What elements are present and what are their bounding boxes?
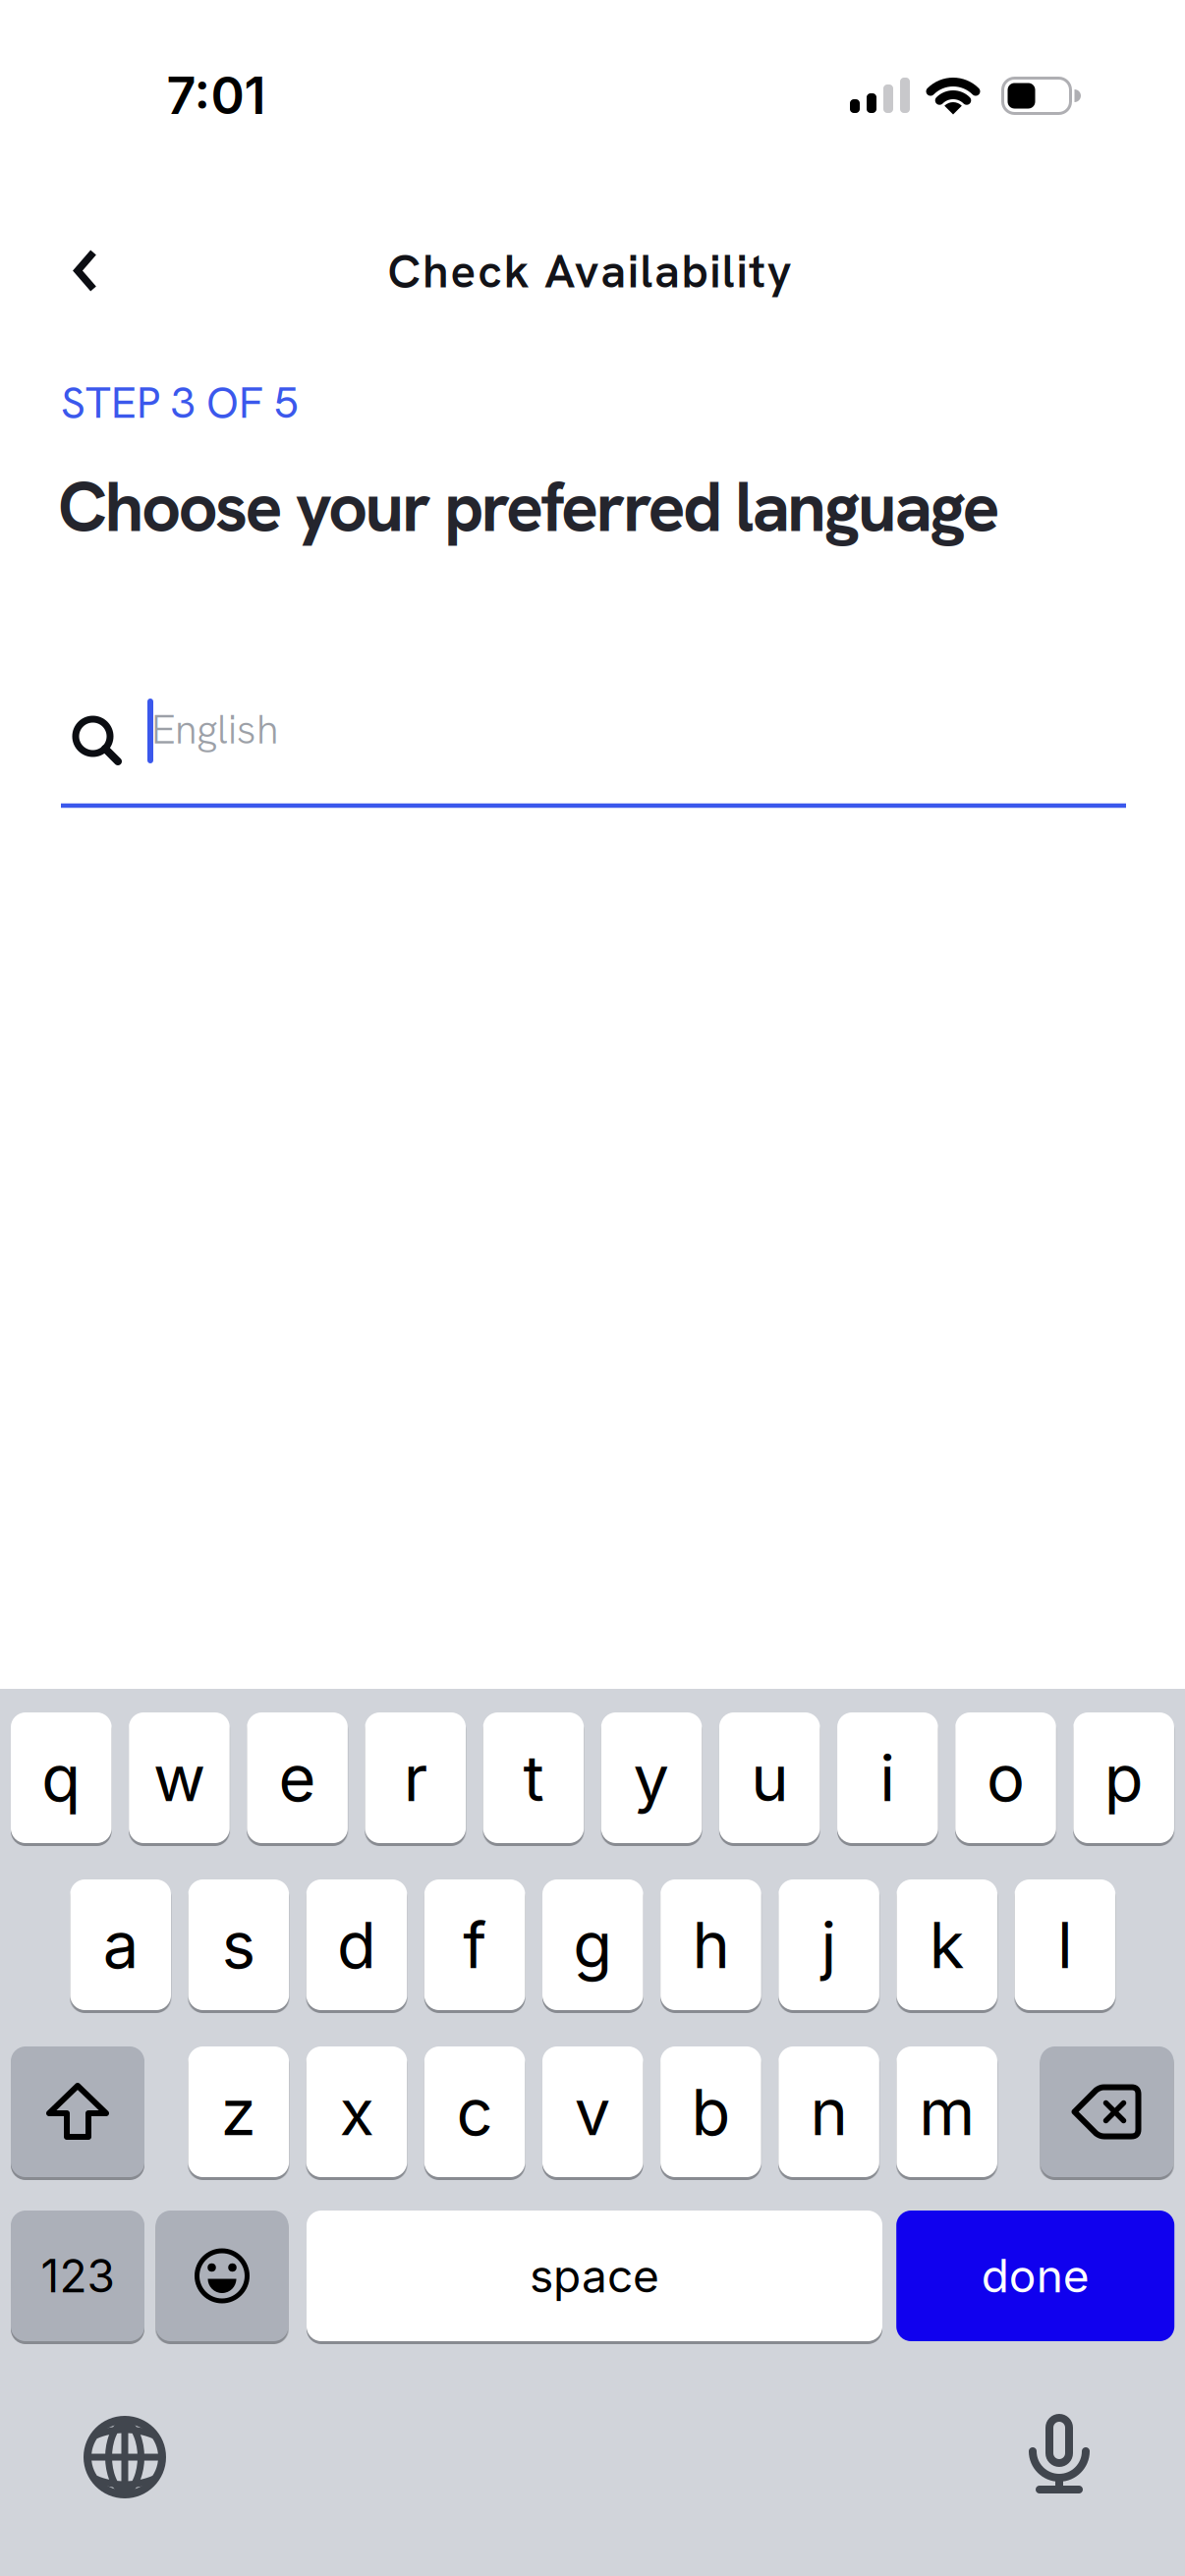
- button[interactable]: s: [188, 1879, 289, 2010]
- button[interactable]: Emoji: [156, 2211, 288, 2341]
- staticText: j: [821, 1906, 837, 1983]
- button[interactable]: c: [424, 2046, 525, 2177]
- staticText: a: [103, 1906, 138, 1983]
- staticText: Choose your preferred language: [58, 462, 1000, 552]
- button[interactable]: done: [896, 2211, 1174, 2341]
- staticText: 7:01: [167, 64, 266, 126]
- button[interactable]: y: [601, 1712, 702, 1843]
- staticText: m: [919, 2073, 975, 2150]
- button[interactable]: j: [779, 1879, 879, 2010]
- staticText: English: [151, 702, 279, 756]
- button[interactable]: e: [247, 1712, 348, 1843]
- button[interactable]: Next keyboard: [84, 2416, 166, 2498]
- staticText: b: [691, 2073, 730, 2150]
- button[interactable]: h: [660, 1879, 761, 2010]
- button[interactable]: p: [1073, 1712, 1174, 1843]
- button[interactable]: r: [365, 1712, 466, 1843]
- button[interactable]: x: [306, 2046, 407, 2177]
- staticText: w: [153, 1739, 205, 1816]
- button[interactable]: u: [719, 1712, 820, 1843]
- staticText: i: [880, 1739, 896, 1816]
- button[interactable]: m: [897, 2046, 997, 2177]
- staticText: t: [523, 1739, 544, 1816]
- button[interactable]: Dictate: [1018, 2412, 1100, 2494]
- staticText: y: [633, 1739, 670, 1816]
- staticText: l: [1057, 1906, 1073, 1983]
- staticText: o: [987, 1739, 1025, 1816]
- staticText: g: [573, 1906, 612, 1983]
- staticText: c: [457, 2073, 493, 2150]
- button[interactable]: 123: [11, 2211, 144, 2341]
- button[interactable]: Delete: [1040, 2046, 1174, 2177]
- staticText: u: [751, 1739, 788, 1816]
- button[interactable]: w: [129, 1712, 230, 1843]
- staticText: z: [221, 2073, 256, 2150]
- staticText: f: [463, 1906, 487, 1983]
- button[interactable]: b: [660, 2046, 761, 2177]
- button[interactable]: n: [778, 2046, 879, 2177]
- staticText: k: [929, 1906, 965, 1983]
- button[interactable]: q: [11, 1712, 112, 1843]
- button[interactable]: v: [542, 2046, 643, 2177]
- button[interactable]: Shift: [11, 2046, 144, 2177]
- staticText: q: [42, 1739, 81, 1816]
- button[interactable]: k: [897, 1879, 997, 2010]
- staticText: h: [692, 1906, 730, 1983]
- staticText: space: [530, 2249, 659, 2303]
- button[interactable]: g: [542, 1879, 643, 2010]
- staticText: 123: [41, 2249, 114, 2303]
- staticText: Check Availability: [388, 241, 792, 302]
- staticText: d: [337, 1906, 376, 1983]
- staticText: e: [279, 1739, 316, 1816]
- button[interactable]: z: [188, 2046, 289, 2177]
- staticText: STEP 3 OF 5: [61, 375, 299, 431]
- button[interactable]: Back: [65, 244, 108, 298]
- button[interactable]: d: [306, 1879, 407, 2010]
- staticText: p: [1104, 1739, 1143, 1816]
- button[interactable]: a: [70, 1879, 171, 2010]
- button[interactable]: o: [955, 1712, 1056, 1843]
- button[interactable]: i: [837, 1712, 938, 1843]
- staticText: s: [222, 1906, 255, 1983]
- staticText: r: [404, 1739, 427, 1816]
- button[interactable]: t: [483, 1712, 584, 1843]
- staticText: x: [339, 2073, 374, 2150]
- textField[interactable]: English: [151, 702, 279, 756]
- staticText: done: [981, 2249, 1089, 2303]
- button[interactable]: l: [1015, 1879, 1115, 2010]
- button[interactable]: f: [424, 1879, 525, 2010]
- staticText: v: [575, 2073, 611, 2150]
- staticText: n: [810, 2073, 847, 2150]
- button[interactable]: space: [307, 2211, 882, 2341]
